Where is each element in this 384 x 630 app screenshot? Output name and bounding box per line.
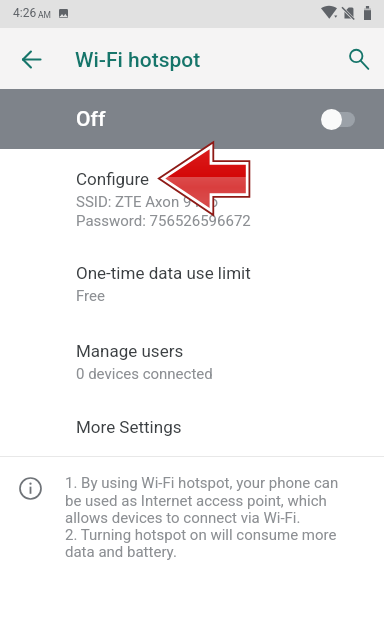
staticText: Wi-Fi hotspot bbox=[75, 48, 201, 73]
button[interactable]: More Settings bbox=[0, 405, 384, 442]
button[interactable]: Search bbox=[338, 39, 378, 79]
staticText: Configure bbox=[76, 169, 150, 189]
button[interactable]: Back bbox=[13, 41, 49, 77]
button[interactable]: Off bbox=[0, 89, 384, 149]
button[interactable]: One-time data use limit bbox=[0, 251, 384, 328]
staticText: Off bbox=[76, 107, 106, 132]
staticText: 0 devices connected bbox=[76, 365, 213, 383]
staticText: 4:26 bbox=[13, 6, 37, 20]
staticText: AM bbox=[38, 10, 51, 20]
staticText: SSID: ZTE Axon 9 Pro bbox=[76, 193, 219, 211]
button[interactable]: Configure bbox=[0, 157, 384, 234]
staticText: More Settings bbox=[76, 417, 182, 437]
staticText: 1. By using Wi-Fi hotspot, your phone ca… bbox=[65, 474, 358, 560]
staticText: One-time data use limit bbox=[76, 263, 251, 283]
staticText: Manage users bbox=[76, 341, 184, 361]
staticText: Password: 756526596672 bbox=[76, 212, 251, 230]
button[interactable]: Manage users bbox=[0, 329, 384, 406]
staticText: Free bbox=[76, 287, 105, 305]
